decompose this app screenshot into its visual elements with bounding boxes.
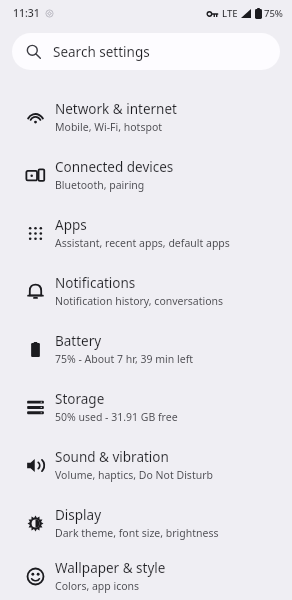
staticText: Battery	[55, 332, 102, 350]
staticText: Colors, app icons	[55, 579, 140, 593]
staticText: 11:31	[13, 6, 40, 20]
staticText: Volume, haptics, Do Not Disturb	[55, 468, 213, 482]
staticText: Notification history, conversations	[55, 294, 224, 308]
button[interactable]: Apps	[0, 204, 292, 262]
staticText: Apps	[55, 216, 87, 234]
staticText: 75% - About 7 hr, 39 min left	[55, 352, 194, 366]
staticText: Dark theme, font size, brightness	[55, 526, 219, 540]
button[interactable]: Search settings	[12, 33, 280, 70]
staticText: 50% used - 31.91 GB free	[55, 410, 178, 424]
staticText: Bluetooth, pairing	[55, 178, 145, 192]
staticText: LTE	[222, 7, 238, 20]
button[interactable]: Network & internet	[0, 88, 292, 146]
button[interactable]: Sound & vibration	[0, 436, 292, 494]
button[interactable]: Battery	[0, 320, 292, 378]
staticText: Wallpaper & style	[55, 559, 166, 577]
staticText: Display	[55, 506, 102, 524]
staticText: Storage	[55, 390, 105, 408]
button[interactable]: Connected devices	[0, 146, 292, 204]
button[interactable]: Storage	[0, 378, 292, 436]
button[interactable]: Wallpaper & style	[0, 552, 292, 600]
staticText: Connected devices	[55, 158, 174, 176]
staticText: Sound & vibration	[55, 448, 169, 466]
button[interactable]: Display	[0, 494, 292, 552]
button[interactable]: Notifications	[0, 262, 292, 320]
staticText: Search settings	[53, 43, 150, 61]
staticText: Network & internet	[55, 100, 177, 118]
staticText: 75%	[264, 7, 283, 20]
staticText: Mobile, Wi-Fi, hotspot	[55, 120, 163, 134]
staticText: Assistant, recent apps, default apps	[55, 236, 230, 250]
staticText: Notifications	[55, 274, 136, 292]
